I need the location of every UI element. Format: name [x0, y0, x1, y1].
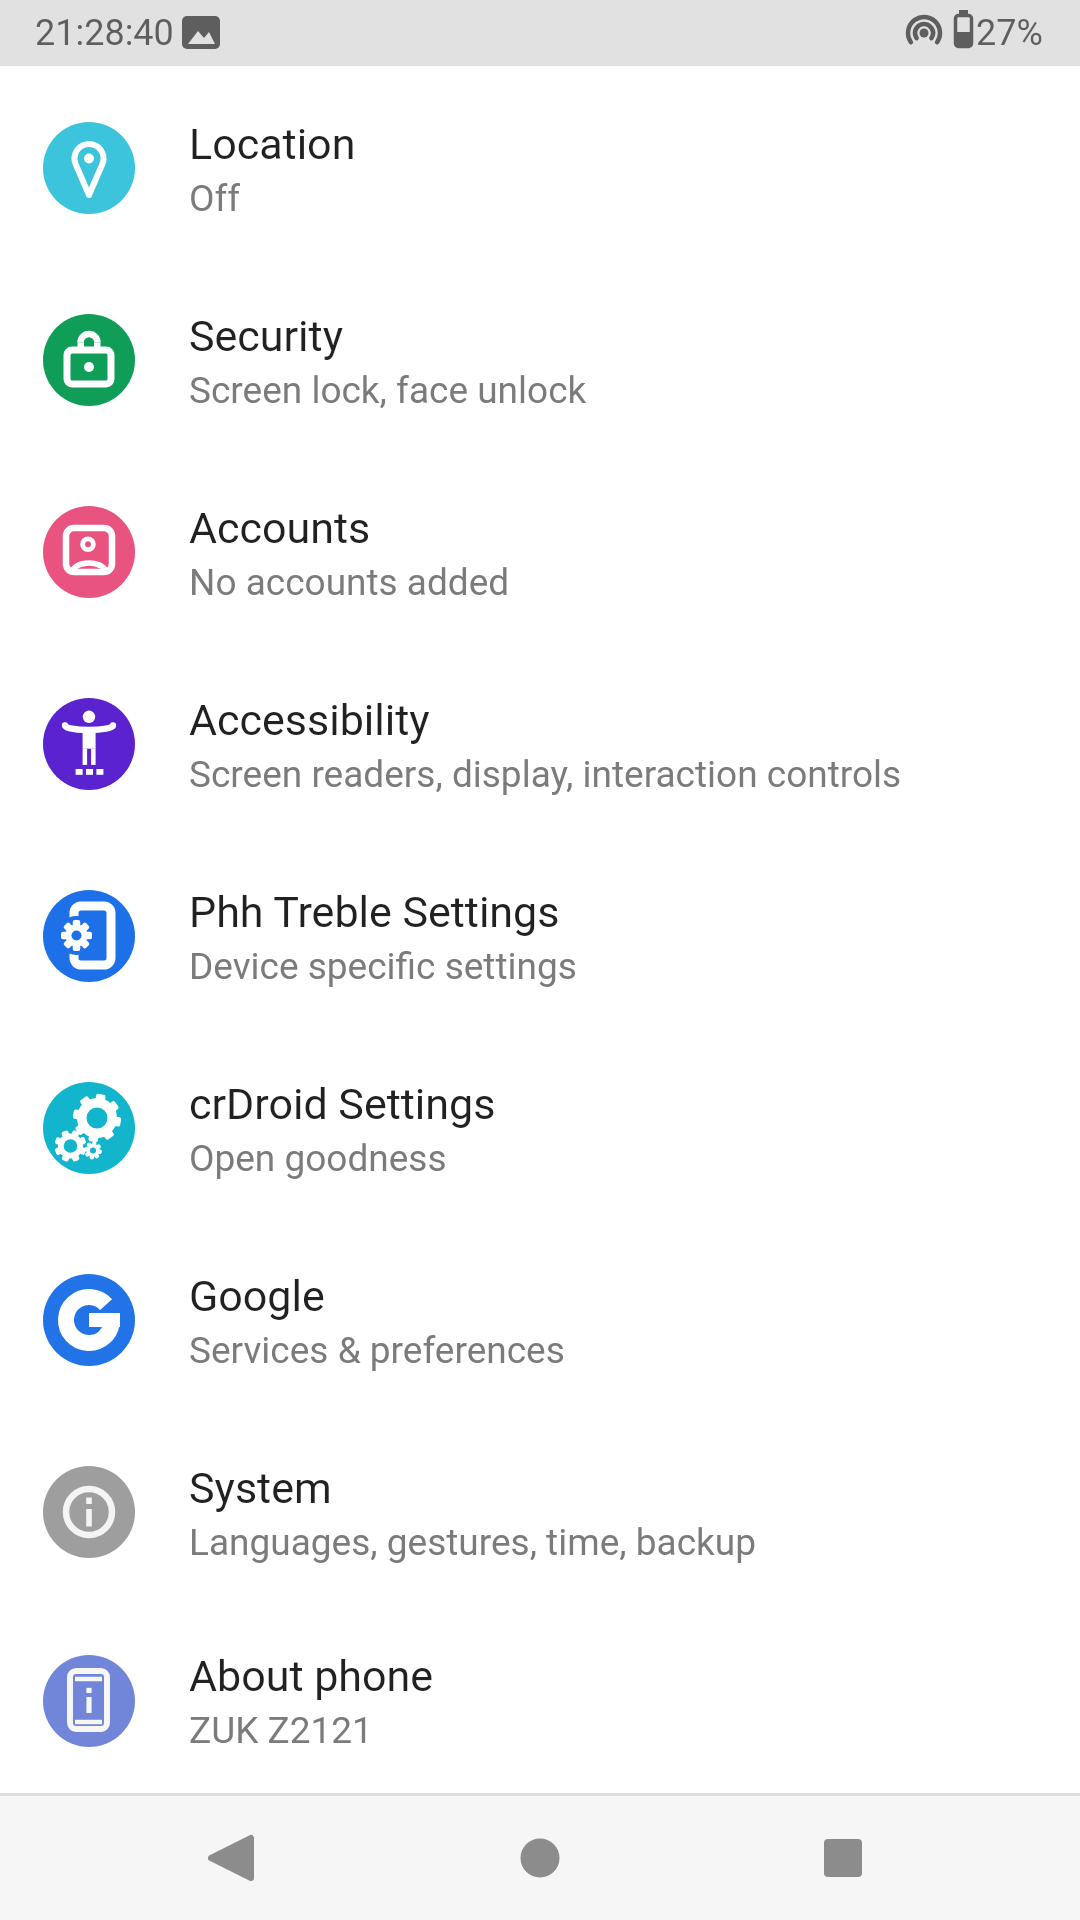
button[interactable]: About phone	[0, 1608, 1080, 1793]
button[interactable]: crDroid Settings	[0, 1032, 1080, 1224]
staticText: Open goodness	[189, 1137, 447, 1180]
staticText: 27%	[976, 12, 1043, 54]
staticText: ZUK Z2121	[189, 1709, 373, 1752]
staticText: Google	[189, 1271, 325, 1321]
staticText: Languages, gestures, time, backup	[189, 1521, 756, 1564]
staticText: Phh Treble Settings	[189, 887, 560, 937]
staticText: Screen lock, face unlock	[189, 369, 587, 412]
staticText: Accessibility	[189, 695, 430, 745]
button[interactable]: Google	[0, 1224, 1080, 1416]
button[interactable]: Accessibility	[0, 648, 1080, 840]
staticText: crDroid Settings	[189, 1079, 496, 1129]
staticText: 21:28:40	[35, 12, 174, 54]
staticText: Security	[189, 311, 343, 361]
button[interactable]: Phh Treble Settings	[0, 840, 1080, 1032]
button[interactable]: Accounts	[0, 456, 1080, 648]
staticText: About phone	[189, 1651, 434, 1701]
button[interactable]	[210, 1836, 254, 1880]
staticText: Off	[189, 177, 241, 220]
button[interactable]: System	[0, 1416, 1080, 1608]
staticText: Services & preferences	[189, 1329, 565, 1372]
staticText: No accounts added	[189, 561, 510, 604]
staticText: Location	[189, 119, 356, 169]
staticText: Accounts	[189, 503, 371, 553]
button[interactable]: Location	[0, 72, 1080, 264]
button[interactable]	[518, 1836, 562, 1880]
staticText: Device specific settings	[189, 945, 577, 988]
button[interactable]	[821, 1836, 865, 1880]
button[interactable]: Security	[0, 264, 1080, 456]
staticText: System	[189, 1463, 332, 1513]
staticText: Screen readers, display, interaction con…	[189, 753, 902, 796]
